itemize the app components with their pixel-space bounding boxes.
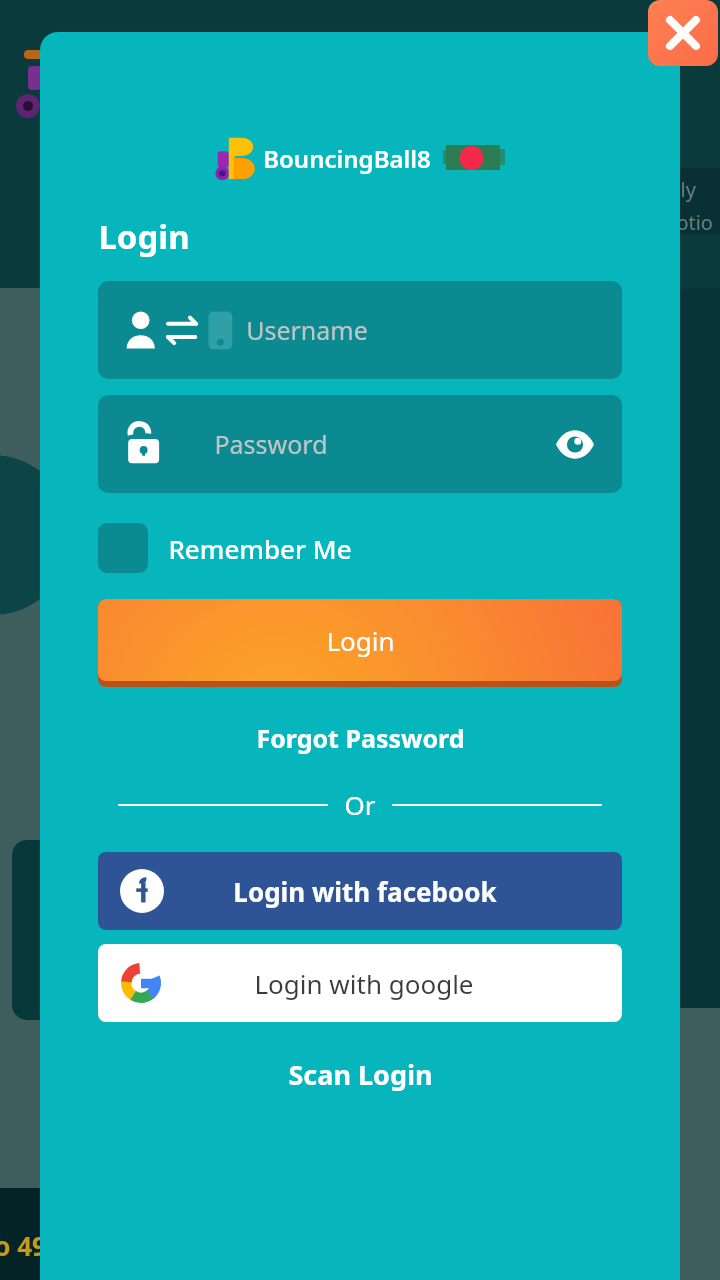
button[interactable]: Show password: [552, 421, 598, 467]
staticText: Password: [214, 427, 328, 461]
staticText: Username: [246, 313, 368, 347]
staticText: Login with google: [254, 966, 474, 1001]
staticText: aily: [664, 176, 696, 203]
button[interactable]: Login with google: [98, 944, 622, 1022]
button[interactable]: Forgot Password: [248, 713, 473, 763]
staticText: notio: [664, 209, 713, 236]
button[interactable]: Login with facebook: [98, 852, 622, 930]
staticText: Login: [98, 214, 190, 259]
staticText: Remember Me: [168, 531, 352, 566]
staticText: BouncingBall8: [263, 142, 431, 175]
button[interactable]: Scan Login: [280, 1048, 441, 1101]
staticText: o 491: [0, 1228, 62, 1263]
staticText: Forgot Password: [256, 721, 465, 755]
button[interactable]: Remember Me: [98, 523, 352, 573]
staticText: Login with facebook: [233, 874, 497, 909]
staticText: Or: [344, 787, 376, 822]
button[interactable]: Password: [98, 395, 622, 493]
button[interactable]: Username: [98, 281, 622, 379]
staticText: Scan Login: [288, 1056, 433, 1093]
button[interactable]: Login: [98, 599, 622, 687]
button[interactable]: Close: [648, 0, 718, 66]
staticText: Login: [326, 623, 395, 658]
